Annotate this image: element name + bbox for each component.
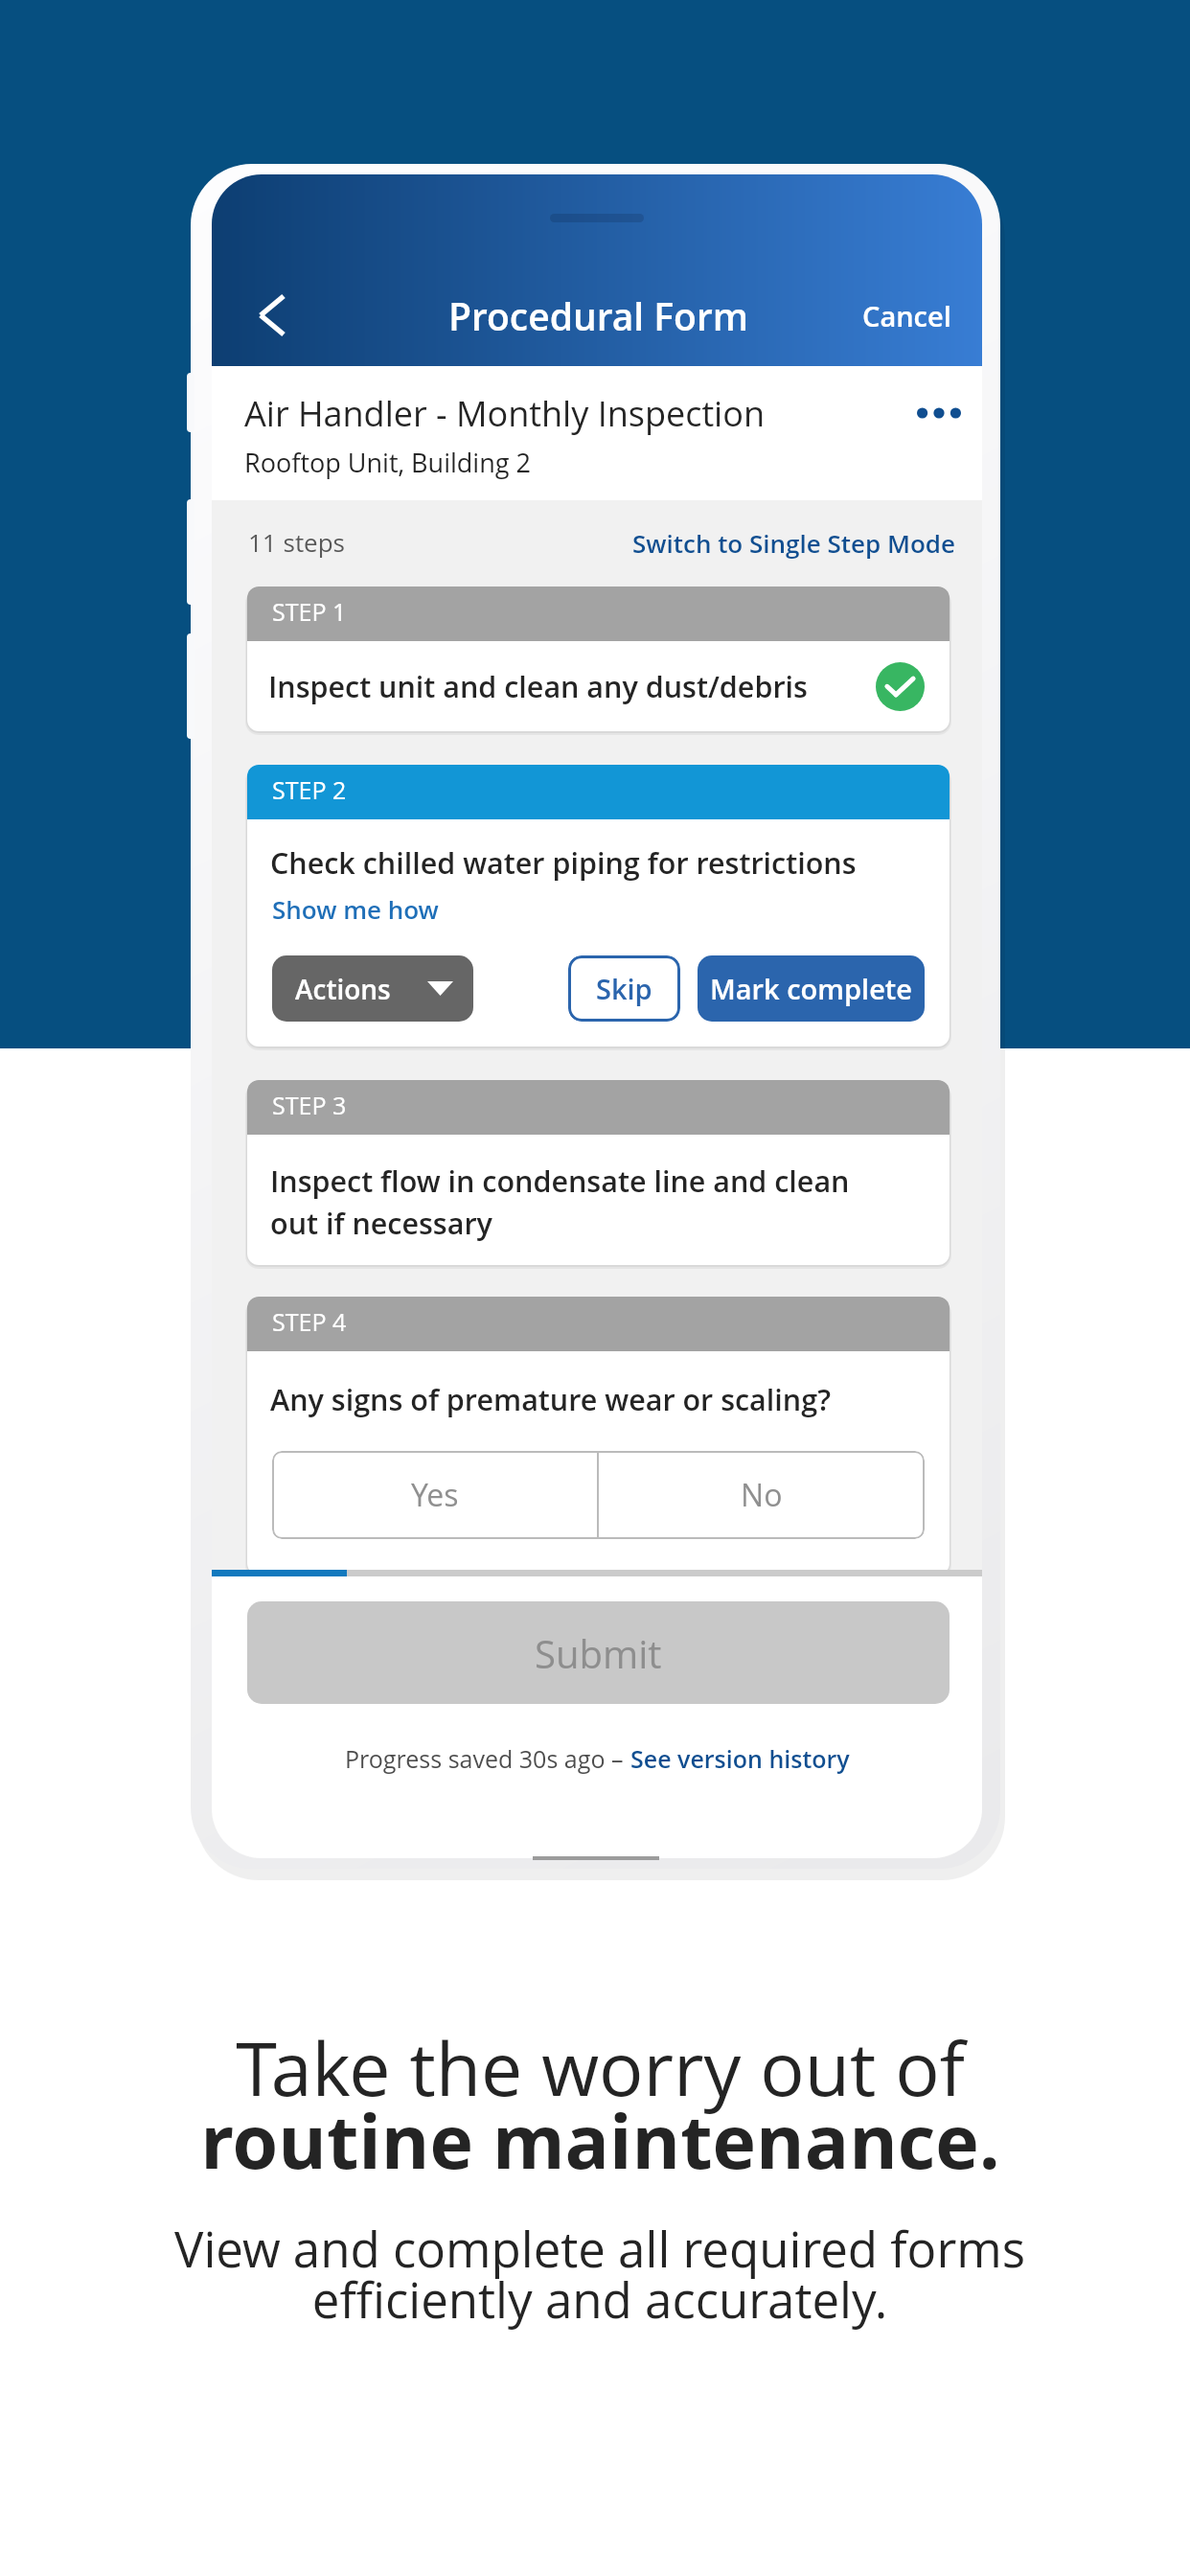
staticText: See version history	[630, 1742, 850, 1775]
button[interactable]: Submit	[247, 1601, 950, 1704]
staticText: Show me how	[272, 892, 439, 926]
staticText: STEP 2	[272, 773, 347, 806]
staticText: Mark complete	[710, 970, 912, 1007]
staticText: Rooftop Unit, Building 2	[244, 445, 531, 480]
staticText: Yes	[411, 1474, 459, 1516]
button[interactable]: STEP 2	[247, 765, 950, 1046]
staticText: Any signs of premature wear or scaling?	[270, 1379, 831, 1419]
button[interactable]: No	[599, 1451, 925, 1539]
button[interactable]: Switch to Single Step Mode	[632, 526, 955, 560]
staticText: Take the worry out of	[236, 2017, 965, 2118]
staticText: Skip	[596, 970, 652, 1007]
button[interactable]: STEP 1	[247, 586, 950, 731]
staticText: Submit	[535, 1627, 662, 1679]
button[interactable]: Actions	[272, 955, 473, 1022]
button[interactable]: Cancel	[851, 289, 963, 342]
staticText: Procedural Form	[448, 290, 749, 341]
button[interactable]: STEP 3	[247, 1080, 950, 1265]
staticText: Cancel	[862, 297, 951, 334]
staticText: Actions	[295, 971, 391, 1007]
staticText: Check chilled water piping for restricti…	[270, 842, 857, 883]
button[interactable]: Back	[229, 270, 315, 360]
staticText: Progress saved 30s ago –	[345, 1742, 630, 1775]
button[interactable]: More options	[907, 381, 971, 445]
button[interactable]: See version history	[630, 1742, 850, 1775]
staticText: Inspect flow in condensate line and clea…	[270, 1161, 850, 1243]
staticText: Switch to Single Step Mode	[632, 526, 955, 560]
staticText: routine maintenance.	[200, 2090, 1000, 2191]
staticText: STEP 3	[272, 1089, 347, 1121]
button[interactable]: Show me how	[272, 892, 439, 926]
staticText: View and complete all required forms eff…	[174, 2215, 1025, 2333]
button[interactable]: Mark complete	[698, 955, 925, 1022]
staticText: No	[741, 1474, 783, 1516]
staticText: Air Handler - Monthly Inspection	[244, 390, 766, 437]
button[interactable]: STEP 4	[247, 1297, 950, 1575]
button[interactable]: Skip	[568, 955, 680, 1022]
staticText: STEP 1	[272, 595, 347, 628]
button[interactable]: Yes	[272, 1451, 597, 1539]
staticText: STEP 4	[272, 1305, 347, 1338]
staticText: 11 steps	[248, 525, 345, 559]
staticText: Inspect unit and clean any dust/debris	[268, 666, 876, 706]
